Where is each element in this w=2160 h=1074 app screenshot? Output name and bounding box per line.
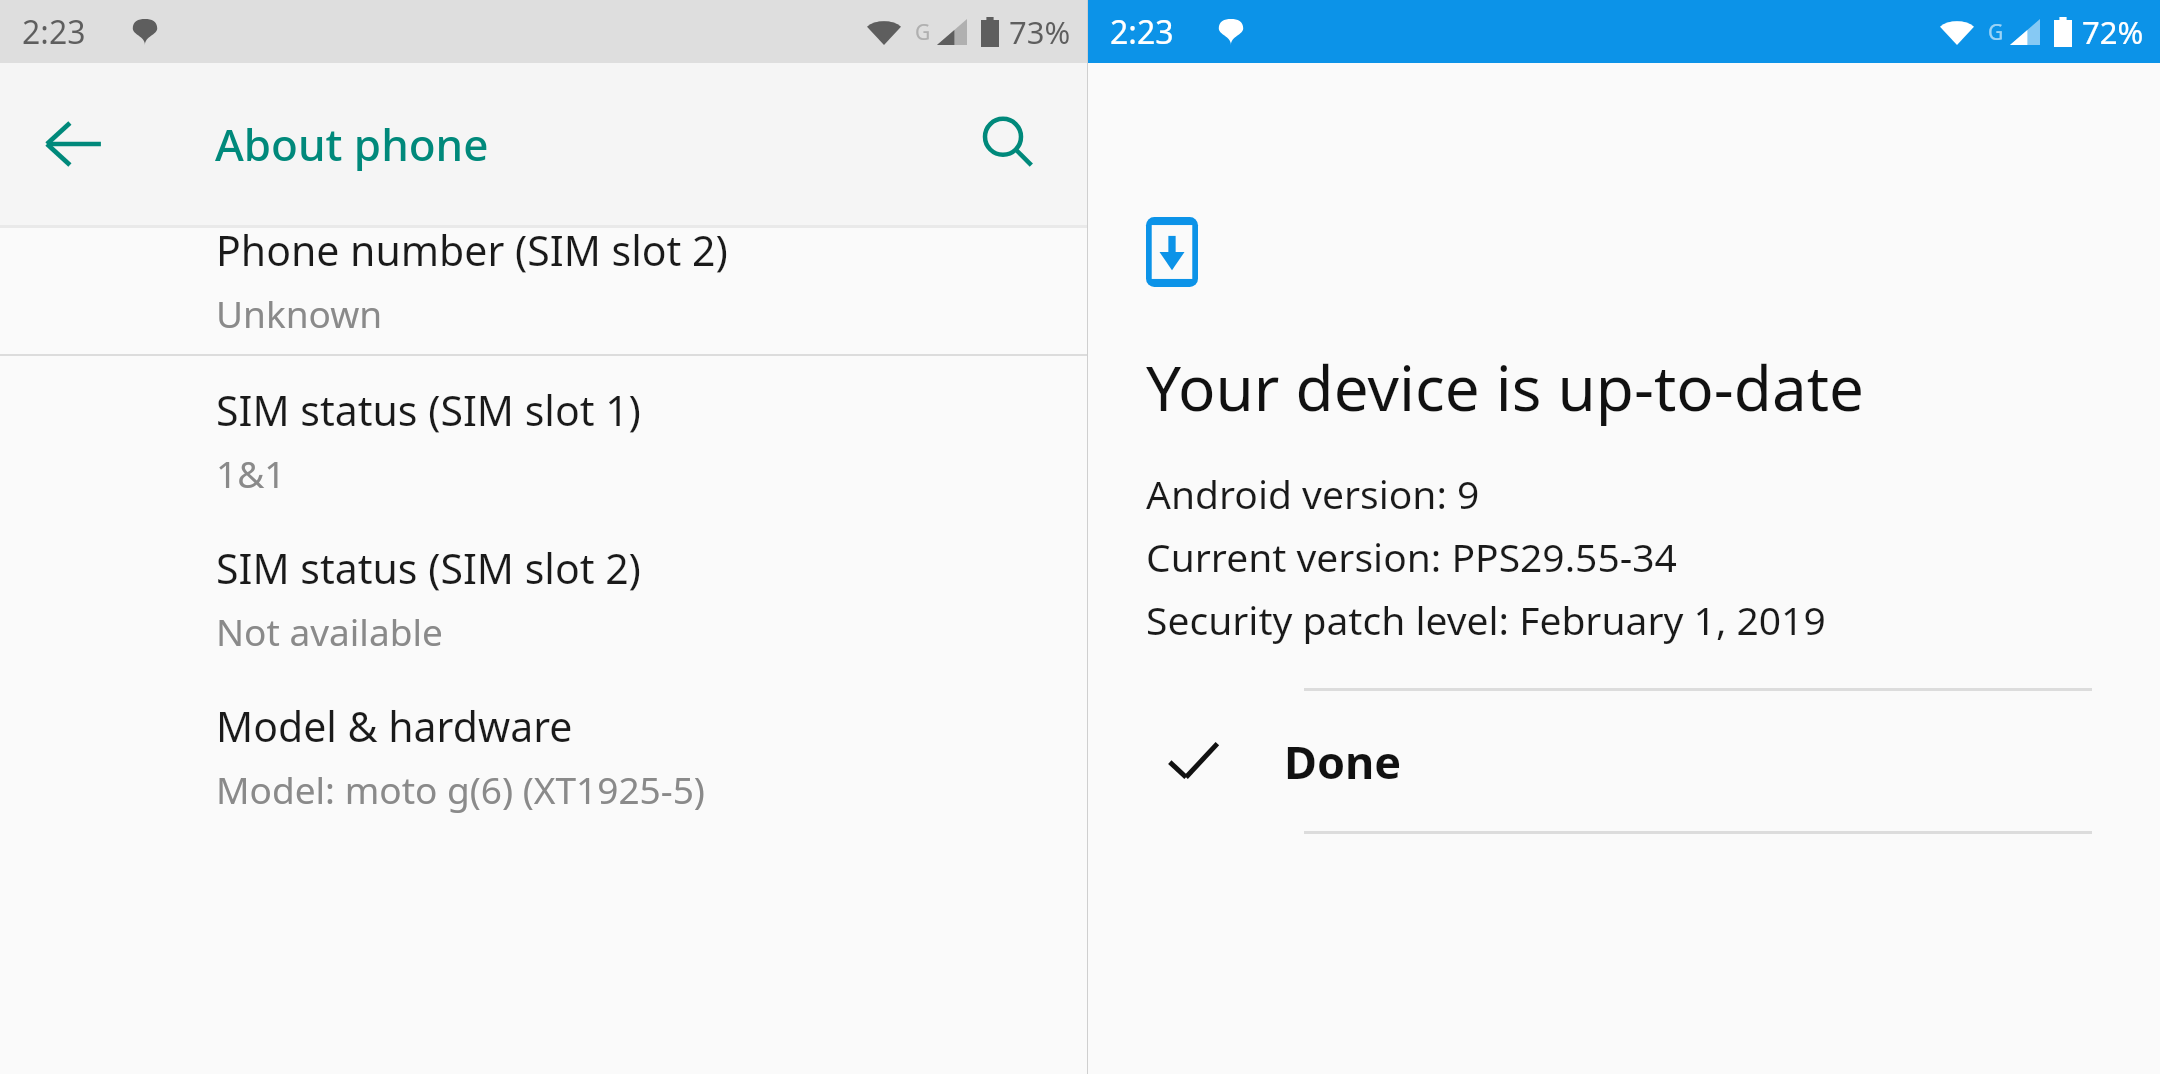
- staticText: 72%: [2082, 11, 2144, 53]
- staticText: 2:23: [22, 10, 86, 54]
- staticText: G: [915, 18, 931, 47]
- staticText: Model & hardware: [216, 698, 573, 754]
- button[interactable]: SIM status (SIM slot 1): [0, 356, 1087, 514]
- staticText: 73%: [1009, 11, 1071, 53]
- staticText: SIM status (SIM slot 1): [216, 382, 641, 438]
- staticText: Your device is up-to-date: [1146, 345, 1865, 429]
- button[interactable]: Done: [1088, 691, 2160, 831]
- button[interactable]: Model & hardware: [0, 672, 1087, 830]
- staticText: G: [1988, 18, 2004, 47]
- staticText: Current version: PPS29.55-34: [1146, 530, 1677, 583]
- button[interactable]: Phone number (SIM slot 2): [0, 196, 1087, 354]
- staticText: Done: [1284, 731, 1402, 792]
- staticText: 2:23: [1110, 10, 1174, 54]
- button[interactable]: Back: [42, 113, 104, 175]
- button[interactable]: Search: [979, 114, 1039, 174]
- staticText: Model: moto g(6) (XT1925-5): [216, 764, 705, 814]
- staticText: Security patch level: February 1, 2019: [1146, 593, 1826, 646]
- staticText: Android version: 9: [1146, 467, 1480, 520]
- staticText: Not available: [216, 606, 443, 656]
- staticText: SIM status (SIM slot 2): [216, 540, 641, 596]
- staticText: 1&1: [216, 448, 286, 498]
- staticText: About phone: [215, 114, 489, 174]
- staticText: Unknown: [216, 288, 383, 338]
- staticText: Phone number (SIM slot 2): [216, 222, 728, 278]
- button[interactable]: SIM status (SIM slot 2): [0, 514, 1087, 672]
